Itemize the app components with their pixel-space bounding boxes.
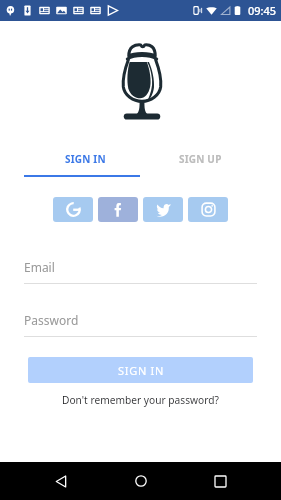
staticText: SIGN UP — [179, 152, 222, 166]
button[interactable]: Don't remember your password? — [56, 391, 225, 409]
button[interactable]: Home — [122, 462, 160, 500]
button[interactable]: SIGN UP — [140, 152, 257, 177]
button[interactable]: Email — [24, 259, 257, 284]
staticText: Email — [24, 259, 55, 275]
button[interactable]: Sign in with Google — [53, 197, 93, 222]
button[interactable]: Sign in with Twitter — [143, 197, 183, 222]
button[interactable]: SIGN IN — [28, 357, 253, 383]
button[interactable]: Sign in with Facebook — [98, 197, 138, 222]
staticText: Password — [24, 312, 79, 328]
staticText: SIGN IN — [65, 152, 106, 166]
button[interactable]: Back — [42, 462, 80, 500]
staticText: SIGN IN — [118, 363, 164, 378]
button[interactable]: Password — [24, 312, 257, 337]
staticText: 09:45 — [248, 3, 277, 18]
button[interactable]: Recents — [201, 462, 239, 500]
staticText: Don't remember your password? — [62, 393, 219, 407]
button[interactable]: Sign in with Instagram — [188, 197, 228, 222]
button[interactable]: SIGN IN — [24, 152, 140, 177]
